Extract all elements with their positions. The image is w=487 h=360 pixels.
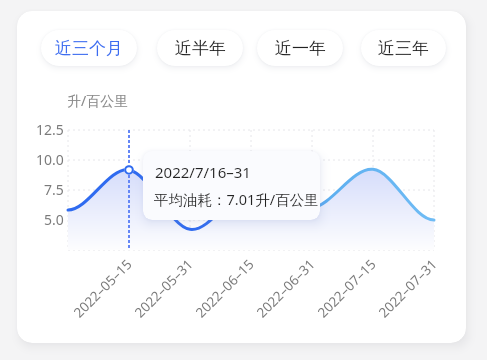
button[interactable]: 近一年: [257, 30, 343, 66]
staticText: 升/百公里: [67, 91, 129, 110]
staticText: 10.0: [36, 150, 64, 168]
staticText: 近三个月: [55, 38, 123, 59]
staticText: 2022–07–15: [314, 255, 380, 321]
staticText: 2022–07–31: [375, 255, 441, 321]
staticText: 近一年: [275, 38, 326, 59]
button[interactable]: 近三年: [361, 30, 446, 66]
staticText: 近三年: [378, 38, 429, 59]
button[interactable]: 近三个月: [41, 30, 137, 66]
button[interactable]: 近半年: [157, 30, 243, 66]
staticText: 12.5: [36, 120, 64, 138]
staticText: 2022–06–31: [253, 255, 319, 321]
staticText: 2022–05–31: [131, 255, 197, 321]
staticText: 2022/7/16–31: [155, 162, 251, 182]
staticText: 2022–05–15: [70, 255, 136, 321]
staticText: 2022–06–15: [192, 255, 258, 321]
staticText: 近半年: [175, 38, 226, 59]
staticText: 7.5: [44, 180, 64, 198]
staticText: 平均油耗：7.01升/百公里: [154, 189, 319, 209]
staticText: 5.0: [44, 210, 64, 228]
